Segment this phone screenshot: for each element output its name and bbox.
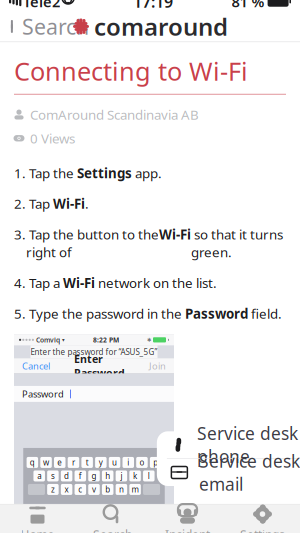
button[interactable]: Search bbox=[0, 6, 97, 47]
staticText: 8:22 PM bbox=[93, 335, 119, 344]
staticText: b bbox=[105, 484, 110, 495]
staticText: 0 Views bbox=[30, 129, 75, 147]
staticText: Enter Password bbox=[74, 352, 125, 380]
staticText: Password bbox=[22, 388, 64, 400]
staticText: Connecting to Wi-Fi bbox=[14, 54, 248, 88]
staticText: p bbox=[153, 457, 158, 468]
staticText: j bbox=[120, 471, 122, 481]
staticText: r bbox=[72, 457, 75, 468]
staticText: t bbox=[86, 457, 89, 468]
staticText: Wi-Fi bbox=[63, 274, 95, 292]
staticText: Wi-Fi bbox=[159, 225, 191, 243]
staticText: u bbox=[112, 457, 117, 468]
staticText: Tap bbox=[26, 195, 53, 212]
staticText: Home bbox=[20, 527, 54, 533]
staticText: o bbox=[139, 457, 144, 468]
staticText: h bbox=[105, 471, 110, 481]
staticText: 5. bbox=[14, 305, 26, 322]
staticText: m bbox=[132, 484, 139, 495]
staticText: d bbox=[64, 471, 69, 481]
staticText: Wi-Fi bbox=[53, 195, 85, 212]
staticText: c bbox=[78, 484, 82, 495]
staticText: field. bbox=[248, 305, 282, 322]
staticText: a bbox=[37, 471, 41, 481]
staticText: Tele2 bbox=[23, 0, 60, 11]
staticText: q bbox=[30, 457, 35, 468]
staticText: Search bbox=[93, 527, 132, 533]
staticText: n bbox=[119, 484, 124, 495]
staticText: Tap the button to the right of bbox=[26, 225, 159, 261]
staticText: app. bbox=[132, 164, 162, 182]
staticText: ✱ bbox=[147, 337, 151, 343]
staticText: 4. bbox=[14, 274, 26, 292]
staticText: s bbox=[51, 471, 55, 481]
staticText: w bbox=[43, 457, 49, 468]
staticText: Service desk phone bbox=[197, 422, 298, 468]
staticText: Cancel bbox=[22, 360, 50, 372]
staticText: Enter the password for “ASUS_5G” bbox=[30, 346, 157, 357]
button[interactable]: Search bbox=[75, 500, 150, 533]
staticText: Comviq bbox=[36, 335, 60, 344]
button[interactable]: Home bbox=[0, 500, 75, 533]
staticText: Settings bbox=[77, 164, 132, 182]
staticText: network on the list. bbox=[95, 274, 217, 292]
staticText: 81 % bbox=[232, 0, 265, 11]
button[interactable]: Settings bbox=[225, 500, 300, 533]
button[interactable]: Incident bbox=[150, 500, 225, 533]
staticText: l bbox=[148, 471, 150, 481]
staticText: so that it turns green. bbox=[191, 225, 283, 261]
staticText: comaround bbox=[94, 10, 228, 42]
staticText: . bbox=[85, 195, 89, 212]
staticText: ▾ bbox=[62, 337, 65, 343]
staticText: 2. bbox=[14, 195, 26, 212]
staticText: Tap a bbox=[26, 274, 63, 292]
staticText: k bbox=[133, 471, 137, 481]
staticText: i bbox=[127, 457, 129, 468]
staticText: 3. bbox=[14, 225, 26, 243]
button[interactable]: Service desk email bbox=[157, 459, 300, 486]
staticText: 17:19 bbox=[133, 0, 173, 12]
staticText: z bbox=[51, 484, 55, 495]
staticText: f bbox=[79, 471, 82, 481]
staticText: Type the password in the bbox=[26, 305, 185, 322]
staticText: e bbox=[57, 457, 62, 468]
staticText: Password bbox=[185, 305, 248, 322]
staticText: x bbox=[65, 484, 69, 495]
staticText: y bbox=[99, 457, 103, 468]
staticText: Settings bbox=[240, 527, 285, 533]
staticText: Service desk email bbox=[199, 449, 300, 495]
staticText: Join bbox=[149, 360, 166, 372]
staticText: v bbox=[92, 484, 96, 495]
staticText: Search bbox=[22, 12, 89, 41]
staticText: Tap the bbox=[26, 164, 77, 182]
button[interactable]: Service desk phone bbox=[157, 431, 300, 458]
staticText: ComAround Scandinavia AB bbox=[30, 106, 199, 123]
staticText: g bbox=[91, 471, 96, 481]
button[interactable]: ComAround home bbox=[72, 6, 228, 46]
staticText: 1. bbox=[14, 164, 26, 182]
staticText: Incident bbox=[165, 527, 210, 533]
button[interactable]: Cancel bbox=[19, 360, 53, 372]
